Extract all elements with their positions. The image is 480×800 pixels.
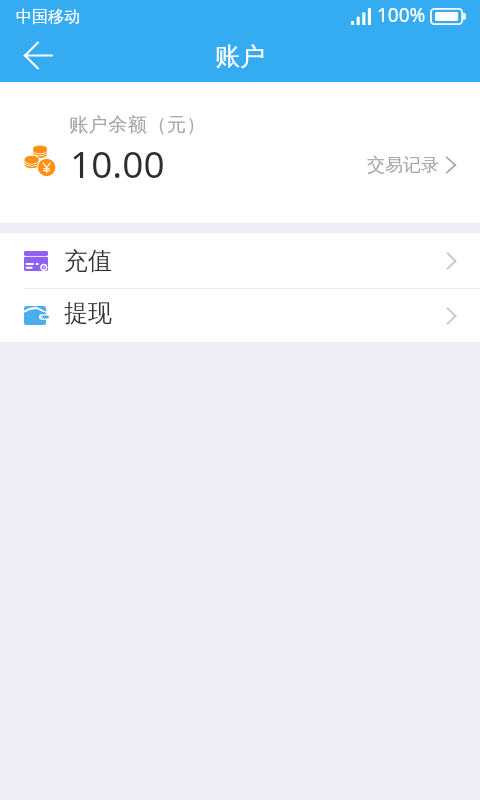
button[interactable]: 交易记录 xyxy=(355,144,480,187)
staticText: 提现 xyxy=(64,298,112,328)
staticText: 100% xyxy=(377,2,426,28)
staticText: 账户余额（元） xyxy=(69,113,207,137)
staticText: 中国移动 xyxy=(16,7,80,27)
button[interactable]: 提现 xyxy=(0,289,480,342)
staticText: 账户 xyxy=(215,41,265,72)
staticText: 交易记录 xyxy=(367,154,439,177)
staticText: 10.00 xyxy=(70,138,165,188)
staticText: 充值 xyxy=(64,246,112,276)
button[interactable]: 充值 xyxy=(0,233,480,288)
button[interactable]: Back xyxy=(8,30,66,82)
